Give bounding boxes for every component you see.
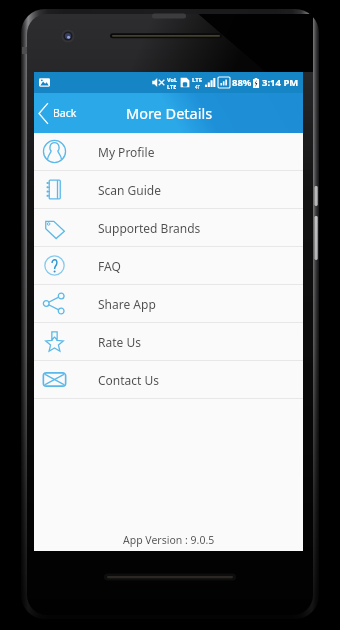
staticText: LTE xyxy=(167,83,177,90)
button[interactable]: Contact Us xyxy=(34,361,303,398)
button[interactable]: Scan Guide xyxy=(34,171,303,208)
button[interactable]: Back xyxy=(34,93,82,133)
staticText: Back xyxy=(53,106,77,120)
button[interactable]: Supported Brands xyxy=(34,209,303,246)
staticText: 4T xyxy=(195,84,201,90)
staticText: VoL xyxy=(167,76,177,83)
staticText: LTE xyxy=(192,76,203,84)
staticText: Contact Us xyxy=(98,372,160,388)
staticText: Share App xyxy=(98,296,156,312)
button[interactable]: Share App xyxy=(34,285,303,322)
staticText: Scan Guide xyxy=(98,182,162,198)
staticText: More Details xyxy=(126,103,213,123)
button[interactable]: Rate Us xyxy=(34,323,303,360)
button[interactable]: FAQ xyxy=(34,247,303,284)
staticText: App Version : 9.0.5 xyxy=(123,533,215,547)
staticText: My Profile xyxy=(98,144,155,160)
button[interactable]: My Profile xyxy=(34,133,303,170)
staticText: 3:14 PM xyxy=(262,76,299,89)
staticText: Rate Us xyxy=(98,334,141,350)
staticText: 88% xyxy=(232,76,252,89)
staticText: Supported Brands xyxy=(98,220,201,236)
staticText: FAQ xyxy=(98,258,121,274)
